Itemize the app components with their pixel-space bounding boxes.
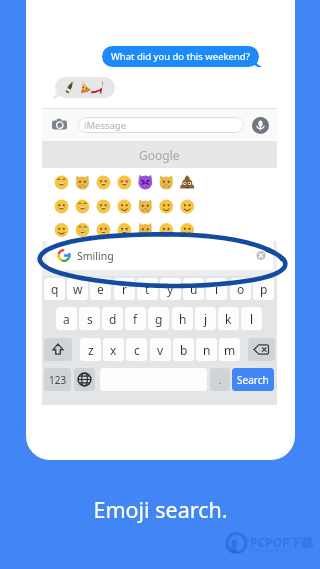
- button[interactable]: Search: [232, 368, 274, 391]
- staticText: v: [157, 342, 164, 358]
- button[interactable]: a: [56, 307, 77, 330]
- staticText: h: [179, 311, 187, 327]
- staticText: q: [51, 281, 59, 297]
- button[interactable]: i: [206, 278, 227, 300]
- button[interactable]: j: [195, 307, 216, 330]
- button[interactable]: w: [67, 278, 88, 300]
- staticText: r: [122, 281, 127, 297]
- staticText: c: [134, 342, 140, 358]
- button[interactable]: p: [253, 278, 274, 300]
- staticText: p: [260, 281, 268, 297]
- button[interactable]: Smiling: [47, 241, 273, 270]
- staticText: k: [225, 311, 232, 327]
- staticText: Smiling: [77, 249, 114, 263]
- staticText: .: [219, 374, 222, 386]
- staticText: m: [224, 342, 236, 358]
- button[interactable]: l: [241, 307, 262, 330]
- button[interactable]: u: [183, 278, 204, 300]
- button[interactable]: 123: [44, 368, 71, 391]
- staticText: n: [203, 342, 211, 358]
- button[interactable]: What did you do this weekend?: [102, 46, 259, 67]
- staticText: Google: [139, 147, 180, 163]
- staticText: 123: [49, 373, 67, 387]
- staticText: g: [155, 311, 163, 327]
- button[interactable]: [55, 77, 115, 98]
- button[interactable]: n: [196, 338, 217, 361]
- staticText: d: [109, 311, 117, 327]
- button[interactable]: Shift: [44, 338, 72, 361]
- staticText: a: [63, 311, 70, 327]
- button[interactable]: f: [125, 307, 146, 330]
- button[interactable]: g: [148, 307, 169, 330]
- button[interactable]: Backspace: [248, 338, 275, 361]
- staticText: PCPOP下载: [250, 534, 314, 550]
- staticText: j: [204, 311, 208, 327]
- button[interactable]: Switch keyboard: [74, 368, 95, 391]
- staticText: w: [73, 281, 83, 297]
- staticText: Search: [237, 373, 269, 387]
- staticText: What did you do this weekend?: [111, 50, 250, 63]
- staticText: s: [87, 311, 93, 327]
- staticText: f: [133, 311, 138, 327]
- button[interactable]: y: [160, 278, 181, 300]
- staticText: e: [97, 281, 104, 297]
- button[interactable]: z: [80, 338, 101, 361]
- staticText: l: [250, 311, 254, 327]
- button[interactable]: b: [173, 338, 194, 361]
- button[interactable]: h: [172, 307, 193, 330]
- staticText: y: [167, 281, 174, 297]
- button[interactable]: k: [218, 307, 239, 330]
- button[interactable]: v: [150, 338, 171, 361]
- button[interactable]: x: [103, 338, 124, 361]
- button[interactable]: o: [230, 278, 251, 300]
- staticText: i: [215, 281, 219, 297]
- button[interactable]: t: [137, 278, 158, 300]
- staticText: o: [237, 281, 245, 297]
- button[interactable]: s: [79, 307, 100, 330]
- staticText: u: [190, 281, 198, 297]
- button[interactable]: q: [44, 278, 65, 300]
- staticText: z: [88, 342, 94, 358]
- button[interactable]: d: [102, 307, 123, 330]
- button[interactable]: Voice message: [252, 117, 269, 134]
- button[interactable]: Camera: [52, 118, 67, 131]
- staticText: x: [110, 342, 117, 358]
- staticText: Emoji search.: [93, 495, 228, 524]
- button[interactable]: e: [90, 278, 111, 300]
- button[interactable]: iMessage: [78, 117, 244, 133]
- button[interactable]: r: [114, 278, 135, 300]
- button[interactable]: m: [219, 338, 240, 361]
- staticText: iMessage: [84, 119, 127, 132]
- button[interactable]: [42, 168, 277, 241]
- staticText: b: [180, 342, 188, 358]
- button[interactable]: c: [126, 338, 147, 361]
- staticText: t: [145, 281, 150, 297]
- button[interactable]: .: [210, 368, 230, 391]
